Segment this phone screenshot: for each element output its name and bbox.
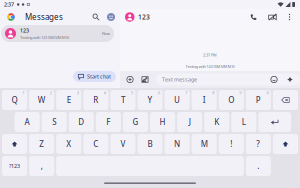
staticText: J — [189, 117, 191, 127]
staticText: C — [93, 139, 98, 149]
staticText: T — [121, 95, 125, 105]
staticText: 9 — [239, 90, 241, 95]
button[interactable]: 2 — [29, 90, 54, 110]
button[interactable]: Backspace — [273, 90, 298, 110]
staticText: Texting with 123 (SMS/MMS) — [185, 64, 234, 69]
button[interactable]: 8 — [192, 90, 217, 110]
staticText: Z — [39, 139, 44, 149]
button[interactable]: 3 — [56, 90, 81, 110]
button[interactable]: 1 — [2, 90, 27, 110]
button[interactable]: N — [164, 134, 190, 154]
button[interactable]: M — [192, 134, 217, 154]
button[interactable]: Start chat — [73, 71, 116, 82]
button[interactable]: A — [15, 112, 40, 132]
button[interactable]: G — [123, 112, 148, 132]
staticText: P — [256, 95, 261, 105]
button[interactable]: F — [96, 112, 121, 132]
button[interactable]: 123 — [1, 25, 114, 42]
staticText: U — [174, 95, 180, 105]
staticText: 123 — [20, 27, 29, 34]
button[interactable]: ?123 — [2, 156, 27, 176]
button[interactable]: ? — [246, 134, 271, 154]
button[interactable]: 9 — [219, 90, 244, 110]
button[interactable]: D — [69, 112, 94, 132]
staticText: Text message — [162, 76, 197, 83]
staticText: E — [67, 95, 71, 105]
staticText: 3 — [77, 90, 79, 95]
staticText: 6 — [158, 90, 160, 95]
staticText: B — [147, 139, 152, 149]
staticText: 123 — [138, 13, 150, 21]
staticText: Y — [147, 95, 152, 105]
staticText: Texting with 123 (SMS/MMS) — [20, 35, 69, 40]
staticText: M — [201, 139, 208, 149]
staticText: D — [78, 117, 84, 127]
button[interactable]: 0 — [246, 90, 271, 110]
staticText: O — [228, 95, 234, 105]
staticText: 5 — [131, 90, 133, 95]
staticText: X — [66, 139, 71, 149]
button[interactable]: 4 — [83, 90, 108, 110]
button[interactable]: H — [150, 112, 175, 132]
button[interactable]: ! — [219, 134, 244, 154]
button[interactable]: Search — [91, 12, 101, 22]
button[interactable]: More options — [286, 11, 293, 22]
button[interactable]: Video call — [267, 11, 278, 22]
staticText: ?123 — [9, 162, 20, 170]
button[interactable]: 5 — [110, 90, 135, 110]
button[interactable]: J — [177, 112, 202, 132]
staticText: ! — [230, 139, 232, 149]
staticText: 2 — [50, 90, 52, 95]
staticText: K — [214, 117, 219, 127]
button[interactable]: 7 — [164, 90, 190, 110]
button[interactable]: B — [137, 134, 163, 154]
staticText: I — [203, 95, 206, 105]
staticText: L — [242, 117, 246, 127]
staticText: 4 — [104, 90, 106, 95]
button[interactable]: Shift — [273, 134, 298, 154]
button[interactable]: Attach — [125, 74, 135, 84]
button[interactable]: Shift — [2, 134, 27, 154]
staticText: 8 — [212, 90, 214, 95]
staticText: W — [38, 95, 46, 105]
staticText: . — [257, 161, 259, 171]
staticText: H — [160, 117, 166, 127]
staticText: 2:37 PM — [203, 52, 217, 58]
staticText: S — [52, 117, 56, 127]
staticText: F — [106, 117, 110, 127]
staticText: , — [41, 161, 43, 171]
staticText: Start chat — [87, 73, 111, 80]
staticText: 2:37 — [4, 1, 14, 8]
staticText: 1 — [23, 90, 25, 95]
staticText: Messages — [25, 12, 63, 22]
button[interactable]: Account — [106, 12, 116, 22]
staticText: G — [132, 117, 138, 127]
staticText: R — [93, 95, 98, 105]
button[interactable]: K — [204, 112, 229, 132]
button[interactable]: Call — [248, 11, 259, 22]
button[interactable]: S — [42, 112, 67, 132]
button[interactable]: X — [56, 134, 81, 154]
staticText: 7 — [185, 90, 187, 95]
button[interactable]: Z — [29, 134, 54, 154]
button[interactable]: Return — [258, 112, 291, 132]
staticText: N — [174, 139, 180, 149]
button[interactable]: Gallery — [140, 74, 150, 84]
staticText: 0 — [266, 90, 268, 95]
button[interactable]: V — [110, 134, 135, 154]
button[interactable]: , — [29, 156, 54, 176]
staticText: V — [120, 139, 125, 149]
button[interactable]: C — [83, 134, 108, 154]
button[interactable]: . — [246, 156, 271, 176]
button[interactable]: L — [231, 112, 256, 132]
button[interactable]: 6 — [137, 90, 163, 110]
staticText: Q — [11, 95, 17, 105]
button[interactable]: Text message — [156, 73, 300, 85]
staticText: A — [25, 117, 30, 127]
staticText: Now — [102, 31, 110, 36]
staticText: ? — [256, 139, 260, 149]
